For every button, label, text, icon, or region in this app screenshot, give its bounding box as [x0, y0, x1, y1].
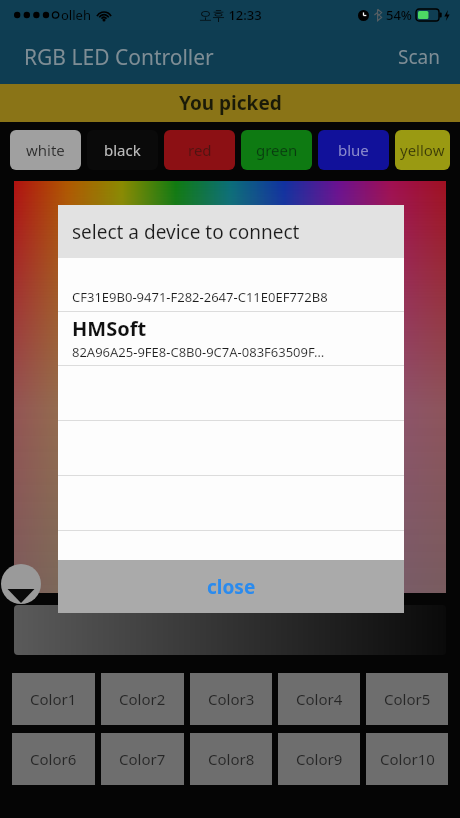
button[interactable]: Color2 [101, 673, 184, 725]
button[interactable]: Color4 [278, 673, 360, 725]
staticText: HMSoft [72, 315, 147, 342]
staticText: Color5 [384, 689, 431, 709]
button[interactable]: Color7 [101, 733, 184, 785]
button[interactable]: Color3 [190, 673, 272, 725]
staticText: Color10 [380, 749, 435, 769]
button[interactable]: green [241, 130, 312, 170]
staticText: CF31E9B0-9471-F282-2647-C11E0EF772B8 [72, 288, 328, 306]
staticText: select a device to connect [72, 219, 300, 245]
button[interactable]: HMSoft [58, 312, 404, 365]
staticText: 54% [386, 6, 412, 24]
staticText: You picked [179, 90, 282, 116]
staticText: yellow [400, 140, 445, 160]
button[interactable]: yellow [395, 130, 450, 170]
staticText: 82A96A25-9FE8-C8B0-9C7A-083F63509F… [72, 343, 325, 361]
staticText: 오후 12:33 [199, 6, 262, 24]
button[interactable]: Color6 [12, 733, 95, 785]
staticText: green [256, 140, 298, 160]
staticText: black [104, 140, 141, 160]
staticText: Color7 [119, 749, 166, 769]
staticText: blue [338, 140, 369, 160]
staticText: Color6 [30, 749, 77, 769]
button[interactable]: Color10 [366, 733, 448, 785]
button[interactable]: Color1 [12, 673, 95, 725]
button[interactable]: white [10, 130, 81, 170]
staticText: Color4 [296, 689, 343, 709]
staticText: olleh [61, 6, 91, 24]
button[interactable]: blue [318, 130, 389, 170]
staticText: close [207, 574, 256, 600]
staticText: RGB LED Controller [24, 43, 214, 72]
staticText: Color8 [208, 749, 255, 769]
button[interactable]: black [87, 130, 158, 170]
staticText: Color3 [208, 689, 255, 709]
staticText: Color9 [296, 749, 343, 769]
button[interactable]: Scan [388, 36, 450, 78]
button[interactable]: Color9 [278, 733, 360, 785]
button[interactable]: CF31E9B0-9471-F282-2647-C11E0EF772B8 [58, 283, 404, 311]
staticText: Scan [398, 44, 440, 70]
staticText: white [26, 140, 65, 160]
button[interactable]: Color8 [190, 733, 272, 785]
button[interactable]: red [164, 130, 235, 170]
staticText: red [188, 140, 212, 160]
staticText: Color1 [30, 689, 77, 709]
staticText: Color2 [119, 689, 166, 709]
button[interactable]: Color5 [366, 673, 448, 725]
button[interactable]: close [58, 560, 404, 613]
